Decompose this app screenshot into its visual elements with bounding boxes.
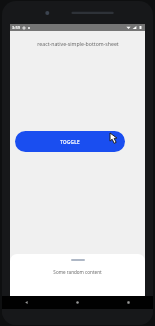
staticText: react-native-simple-bottom-sheet — [37, 40, 119, 47]
button[interactable]: Recent apps — [122, 296, 135, 309]
staticText: Some random content — [53, 269, 102, 275]
other: Drag handle — [71, 259, 85, 261]
button[interactable]: TOGGLE — [15, 131, 125, 152]
staticText: TOGGLE — [60, 139, 80, 145]
button[interactable]: Back — [20, 296, 33, 309]
button[interactable]: Home — [71, 296, 84, 309]
staticText: 3:59 — [12, 25, 20, 30]
